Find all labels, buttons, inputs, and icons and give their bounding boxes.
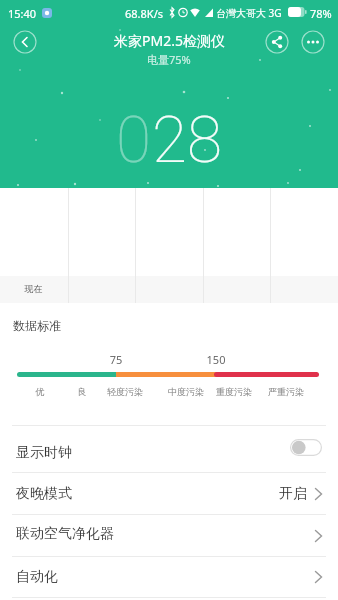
- staticText: 75: [96, 352, 136, 367]
- staticText: 数据标准: [13, 318, 61, 333]
- staticText: 开启: [279, 485, 307, 503]
- staticText: 米家PM2.5检测仪: [114, 31, 225, 50]
- staticText: 严重污染: [256, 386, 316, 397]
- button[interactable]: [301, 30, 325, 54]
- staticText: 台灣大哥大 3G: [216, 6, 282, 20]
- staticText: 夜晚模式: [16, 485, 72, 503]
- button[interactable]: 联动空气净化器: [0, 515, 338, 556]
- button[interactable]: 夜晚模式: [0, 473, 338, 514]
- staticText: 28: [152, 103, 223, 178]
- button[interactable]: 显示时钟: [0, 426, 338, 472]
- staticText: 良: [52, 386, 112, 397]
- staticText: 自动化: [16, 568, 58, 586]
- staticText: 轻度污染: [95, 386, 155, 397]
- staticText: 优: [10, 386, 70, 397]
- staticText: 电量75%: [147, 52, 191, 67]
- staticText: 68.8K/s: [125, 6, 163, 21]
- staticText: 中度污染: [156, 386, 216, 397]
- staticText: 现在: [0, 283, 67, 294]
- button[interactable]: 自动化: [0, 557, 338, 597]
- staticText: 重度污染: [204, 386, 264, 397]
- staticText: 联动空气净化器: [16, 525, 114, 543]
- button[interactable]: [13, 30, 37, 54]
- button[interactable]: [290, 439, 322, 456]
- staticText: 78%: [310, 6, 332, 21]
- staticText: 显示时钟: [16, 444, 72, 462]
- button[interactable]: [265, 30, 289, 54]
- staticText: 15:40: [8, 6, 37, 21]
- staticText: 150: [196, 352, 236, 367]
- staticText: 0: [116, 103, 152, 178]
